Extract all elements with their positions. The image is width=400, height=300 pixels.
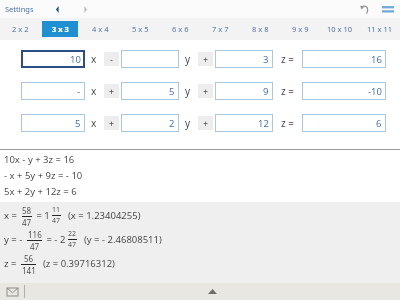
staticText: 116 bbox=[28, 229, 42, 240]
button[interactable]: 10 x 10 bbox=[322, 21, 358, 37]
button[interactable]: 3 x 3 bbox=[42, 21, 78, 37]
staticText: 47 bbox=[22, 217, 32, 226]
staticText: = - 2 bbox=[44, 233, 66, 246]
staticText: 11 x 11 bbox=[367, 24, 393, 34]
staticText: 4 x 4 bbox=[92, 24, 109, 34]
staticText: 2 bbox=[169, 117, 175, 130]
staticText: x bbox=[91, 116, 97, 130]
staticText: (y = - 2.46808511) bbox=[79, 233, 162, 246]
staticText: + bbox=[109, 85, 115, 97]
button[interactable]: 4 x 4 bbox=[82, 21, 118, 37]
staticText: 5x + 2y + 12z = 6 bbox=[4, 185, 77, 198]
staticText: z = bbox=[281, 116, 295, 130]
staticText: 58 bbox=[22, 205, 32, 216]
staticText: 7 x 7 bbox=[212, 24, 229, 34]
staticText: 47 bbox=[52, 216, 61, 226]
button[interactable]: 9 x 9 bbox=[282, 21, 318, 37]
button[interactable]: 2 x 2 bbox=[2, 21, 38, 37]
button[interactable]: 12 bbox=[215, 114, 273, 132]
button[interactable]: - bbox=[21, 82, 85, 100]
staticText: 5 bbox=[169, 85, 175, 98]
button[interactable]: 9 bbox=[215, 82, 273, 100]
staticText: x = bbox=[4, 209, 20, 222]
button[interactable]: + bbox=[104, 116, 119, 130]
staticText: y = - bbox=[4, 233, 25, 246]
staticText: 3 bbox=[263, 53, 269, 66]
button[interactable]: 10 bbox=[21, 50, 85, 68]
button[interactable]: + bbox=[104, 84, 119, 98]
button[interactable] bbox=[121, 50, 179, 68]
staticText: 5 x 5 bbox=[132, 24, 149, 34]
staticText: 47 bbox=[30, 241, 40, 250]
staticText: - x + 5y + 9z = - 10 bbox=[4, 169, 83, 182]
staticText: + bbox=[109, 117, 115, 129]
button[interactable]: 5 x 5 bbox=[122, 21, 158, 37]
button[interactable]: - bbox=[104, 52, 119, 66]
button[interactable]: Previous bbox=[50, 2, 64, 16]
button[interactable]: 6 bbox=[302, 114, 386, 132]
button[interactable]: 6 x 6 bbox=[162, 21, 198, 37]
button[interactable]: -10 bbox=[302, 82, 386, 100]
button[interactable]: Menu bbox=[380, 1, 396, 17]
staticText: 2 x 2 bbox=[12, 24, 29, 34]
button[interactable]: 16 bbox=[302, 50, 386, 68]
staticText: z = bbox=[4, 257, 19, 270]
staticText: 10x - y + 3z = 16 bbox=[4, 153, 75, 166]
staticText: 6 bbox=[376, 117, 382, 130]
staticText: 3 x 3 bbox=[52, 24, 69, 34]
staticText: 16 bbox=[371, 53, 382, 66]
staticText: (z = 0.39716312) bbox=[38, 257, 115, 270]
button[interactable]: 5 bbox=[21, 114, 85, 132]
staticText: (x = 1.23404255) bbox=[63, 209, 141, 222]
staticText: 10 x 10 bbox=[327, 24, 353, 34]
staticText: - bbox=[77, 85, 81, 98]
staticText: -10 bbox=[368, 85, 382, 98]
staticText: 6 x 6 bbox=[172, 24, 189, 34]
staticText: x bbox=[91, 84, 97, 98]
staticText: 22 bbox=[68, 229, 77, 239]
staticText: 9 x 9 bbox=[292, 24, 309, 34]
button[interactable]: 8 x 8 bbox=[242, 21, 278, 37]
button[interactable]: Undo bbox=[357, 1, 373, 17]
staticText: z = bbox=[281, 52, 295, 66]
button[interactable]: 5 bbox=[121, 82, 179, 100]
staticText: + bbox=[203, 53, 209, 65]
button[interactable]: Mail bbox=[0, 283, 24, 300]
button[interactable]: 11 x 11 bbox=[362, 21, 398, 37]
staticText: y bbox=[185, 52, 191, 66]
staticText: x bbox=[91, 52, 97, 66]
staticText: y bbox=[185, 84, 191, 98]
button[interactable]: Show keyboard bbox=[25, 283, 400, 300]
staticText: = 1 bbox=[34, 209, 50, 222]
button[interactable]: Next bbox=[78, 2, 92, 16]
staticText: 47 bbox=[68, 240, 77, 250]
button[interactable]: + bbox=[198, 84, 213, 98]
button[interactable]: Settings bbox=[5, 4, 34, 14]
staticText: - bbox=[110, 53, 113, 65]
staticText: 12 bbox=[258, 117, 269, 130]
button[interactable]: 3 bbox=[215, 50, 273, 68]
staticText: 8 x 8 bbox=[252, 24, 269, 34]
staticText: 10 bbox=[70, 53, 81, 66]
button[interactable]: 7 x 7 bbox=[202, 21, 238, 37]
staticText: 5 bbox=[75, 117, 81, 130]
button[interactable]: 2 bbox=[121, 114, 179, 132]
button[interactable]: + bbox=[198, 116, 213, 130]
staticText: y bbox=[185, 116, 191, 130]
staticText: 9 bbox=[263, 85, 269, 98]
staticText: z = bbox=[281, 84, 295, 98]
button[interactable]: + bbox=[198, 52, 213, 66]
staticText: 141 bbox=[22, 265, 36, 274]
staticText: + bbox=[203, 85, 209, 97]
staticText: + bbox=[203, 117, 209, 129]
staticText: 11 bbox=[52, 205, 61, 215]
staticText: 56 bbox=[24, 253, 34, 264]
